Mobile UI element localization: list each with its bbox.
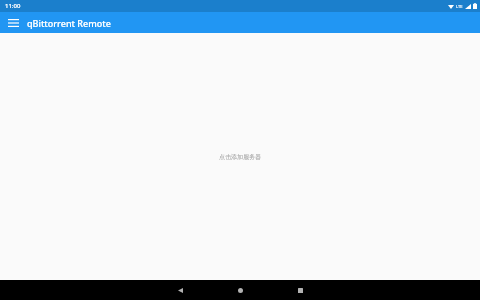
- button[interactable]: Back: [150, 280, 210, 300]
- button[interactable]: Home: [210, 280, 270, 300]
- button[interactable]: Open navigation drawer: [0, 12, 27, 33]
- staticText: qBittorrent Remote: [27, 17, 111, 29]
- button[interactable]: Recent apps: [270, 280, 330, 300]
- button[interactable]: 点击添加服务器: [205, 146, 275, 168]
- staticText: LTE: [456, 4, 463, 9]
- staticText: 11:00: [5, 2, 21, 10]
- staticText: 点击添加服务器: [219, 153, 261, 161]
